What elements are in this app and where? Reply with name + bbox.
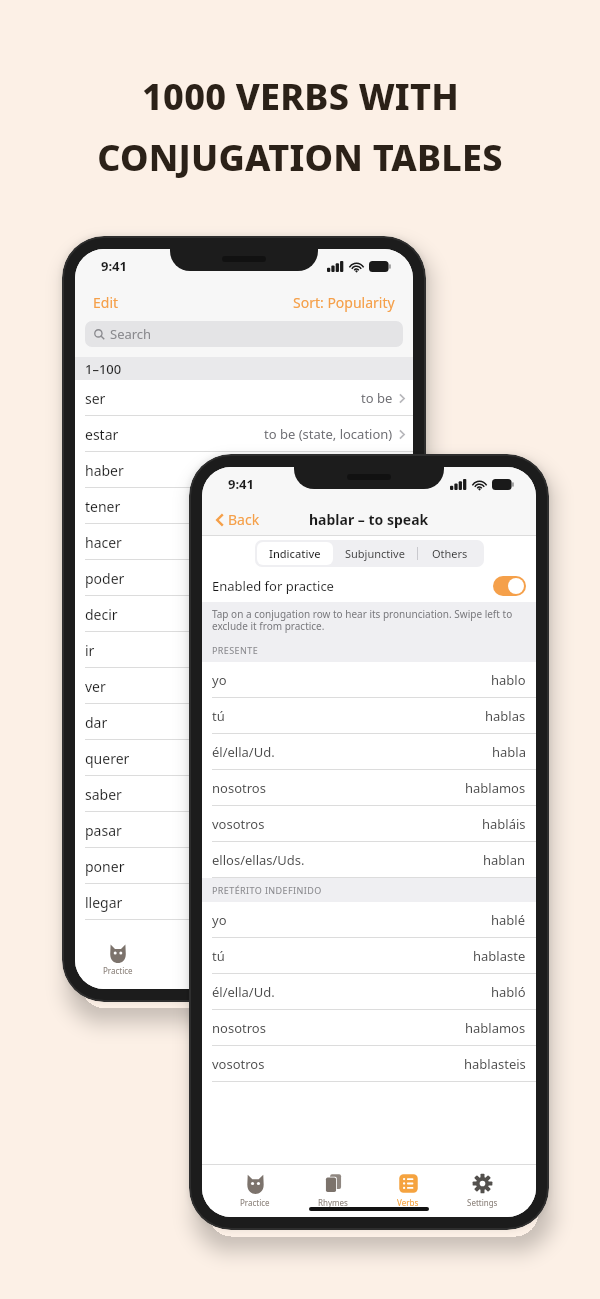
staticText: hablé (491, 911, 526, 929)
staticText: hablar – to speak (309, 510, 429, 529)
staticText: CONJUGATION TABLES (97, 133, 503, 182)
button[interactable]: Sort: Popularity (291, 289, 397, 316)
staticText: decir (85, 605, 118, 624)
button[interactable]: tú (202, 698, 536, 734)
button[interactable]: tener (75, 488, 413, 524)
staticText: Edit (93, 293, 119, 312)
button[interactable]: Settings (457, 1171, 508, 1210)
staticText: Rhymes (318, 1197, 348, 1208)
staticText: hablan (483, 851, 526, 869)
button[interactable]: ser (75, 380, 413, 416)
button[interactable]: ellos/ellas/Uds. (202, 842, 536, 878)
button[interactable]: Indicative (257, 542, 333, 565)
staticText: PRESENTE (212, 644, 259, 656)
button[interactable]: tú (202, 938, 536, 974)
staticText: 1–100 (85, 360, 122, 378)
staticText: yo (212, 911, 227, 929)
staticText: hacer (85, 533, 122, 552)
staticText: nosotros (212, 779, 266, 797)
button[interactable]: yo (202, 902, 536, 938)
staticText: Tap on a conjugation row to hear its pro… (212, 607, 526, 633)
staticText: tener (85, 497, 121, 516)
staticText: to be (361, 389, 393, 407)
button[interactable]: saber (75, 776, 413, 812)
staticText: yo (212, 671, 227, 689)
button[interactable]: él/ella/Ud. (202, 974, 536, 1010)
staticText: PRETÉRITO INDEFINIDO (212, 884, 322, 896)
button[interactable]: pasar (75, 812, 413, 848)
staticText: vosotros (212, 1055, 265, 1073)
staticText: Enabled for practice (212, 577, 334, 595)
button[interactable]: nosotros (202, 1010, 536, 1046)
staticText: tú (212, 707, 225, 725)
staticText: habláis (482, 815, 526, 833)
staticText: saber (85, 785, 122, 804)
staticText: dar (85, 713, 108, 732)
staticText: él/ella/Ud. (212, 743, 275, 761)
staticText: querer (85, 749, 130, 768)
button[interactable]: Edit (91, 289, 121, 316)
staticText: vosotros (212, 815, 265, 833)
staticText: Search (110, 325, 152, 343)
button[interactable]: poder (75, 560, 413, 596)
staticText: poner (85, 857, 125, 876)
staticText: haber (85, 461, 124, 480)
button[interactable]: Search (85, 321, 403, 347)
button[interactable]: poner (75, 848, 413, 884)
staticText: llegar (85, 893, 123, 912)
button[interactable]: él/ella/Ud. (202, 734, 536, 770)
button[interactable]: vosotros (202, 1046, 536, 1082)
button[interactable]: ir (75, 632, 413, 668)
button[interactable]: hacer (75, 524, 413, 560)
button[interactable]: Practice (230, 1171, 280, 1210)
button[interactable]: yo (202, 662, 536, 698)
staticText: 9:41 (101, 257, 127, 275)
staticText: Indicative (269, 546, 321, 561)
button[interactable]: vosotros (202, 806, 536, 842)
button[interactable]: dar (75, 704, 413, 740)
button[interactable]: Others (418, 542, 482, 565)
button[interactable]: Rhymes (308, 1171, 358, 1210)
staticText: Settings (467, 1197, 498, 1208)
staticText: ellos/ellas/Uds. (212, 851, 305, 869)
staticText: Back (228, 510, 260, 529)
button[interactable]: llegar (75, 884, 413, 920)
staticText: ver (85, 677, 106, 696)
staticText: Others (432, 546, 468, 561)
button[interactable]: Enabled for practice (202, 570, 536, 602)
staticText: hablasteis (464, 1055, 526, 1073)
staticText: hablamos (465, 779, 526, 797)
staticText: Subjunctive (345, 546, 405, 561)
staticText: tú (212, 947, 225, 965)
button[interactable]: ver (75, 668, 413, 704)
staticText: él/ella/Ud. (212, 983, 275, 1001)
staticText: ir (85, 641, 95, 660)
staticText: hablaste (473, 947, 526, 965)
staticText: to be (state, location) (264, 425, 393, 443)
staticText: ser (85, 389, 106, 408)
staticText: poder (85, 569, 125, 588)
button[interactable]: decir (75, 596, 413, 632)
button[interactable]: Subjunctive (333, 542, 417, 565)
button[interactable]: Back (214, 506, 262, 533)
button[interactable]: nosotros (202, 770, 536, 806)
staticText: hablamos (465, 1019, 526, 1037)
button[interactable]: estar (75, 416, 413, 452)
button[interactable]: haber (75, 452, 413, 488)
staticText: Practice (103, 965, 133, 976)
staticText: 1000 VERBS WITH (142, 72, 459, 121)
staticText: Sort: Popularity (293, 293, 395, 312)
staticText: hablas (485, 707, 526, 725)
staticText: pasar (85, 821, 122, 840)
button[interactable]: Verbs (387, 1171, 429, 1210)
button[interactable]: querer (75, 740, 413, 776)
staticText: habla (492, 743, 526, 761)
staticText: Practice (240, 1197, 270, 1208)
staticText: hablo (491, 671, 526, 689)
staticText: habló (491, 983, 526, 1001)
staticText: 9:41 (228, 475, 254, 493)
staticText: estar (85, 425, 119, 444)
staticText: nosotros (212, 1019, 266, 1037)
staticText: Verbs (397, 1197, 419, 1208)
